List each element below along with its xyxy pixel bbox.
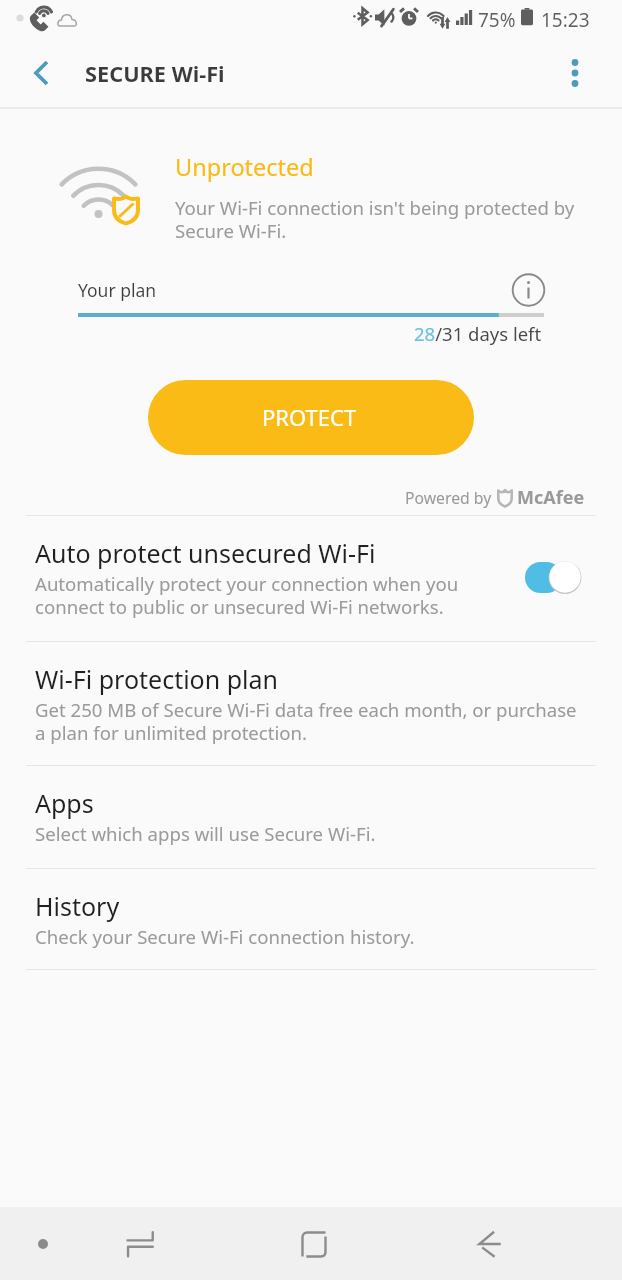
button[interactable]: PROTECT [148,380,474,455]
button[interactable] [0,766,622,868]
staticText: Powered by [405,487,492,508]
staticText: Your plan [78,278,157,302]
button[interactable]: Navigate up [17,49,65,97]
staticText: Automatically protect your connection wh… [35,571,480,619]
staticText: 75% [478,7,516,33]
button[interactable]: Plan information [506,268,551,313]
button[interactable]: Recent apps [117,1221,163,1267]
staticText: PROTECT [262,402,357,432]
staticText: Unprotected [175,151,314,183]
staticText: Select which apps will use Secure Wi-Fi. [35,821,376,846]
button[interactable] [0,869,622,969]
button[interactable] [0,642,622,765]
staticText: 28/31 days left [414,321,542,346]
staticText: Check your Secure Wi-Fi connection histo… [35,924,415,949]
button[interactable]: More options [551,49,599,97]
staticText: SECURE Wi-Fi [85,59,225,89]
button[interactable] [0,516,622,641]
staticText: Wi-Fi protection plan [35,662,278,696]
button[interactable]: Home [291,1221,337,1267]
staticText: Apps [35,786,94,820]
button[interactable]: Auto protect unsecured Wi-Fi, on [505,549,597,606]
staticText: 15:23 [541,7,590,33]
button[interactable]: Hide keyboard [20,1221,65,1266]
staticText: History [35,889,120,923]
staticText: McAfee [517,485,585,510]
staticText: Your Wi-Fi connection isn't being protec… [175,195,575,243]
staticText: Get 250 MB of Secure Wi-Fi data free eac… [35,697,583,745]
staticText: Auto protect unsecured Wi-Fi [35,536,376,570]
button[interactable]: Back [466,1221,512,1267]
